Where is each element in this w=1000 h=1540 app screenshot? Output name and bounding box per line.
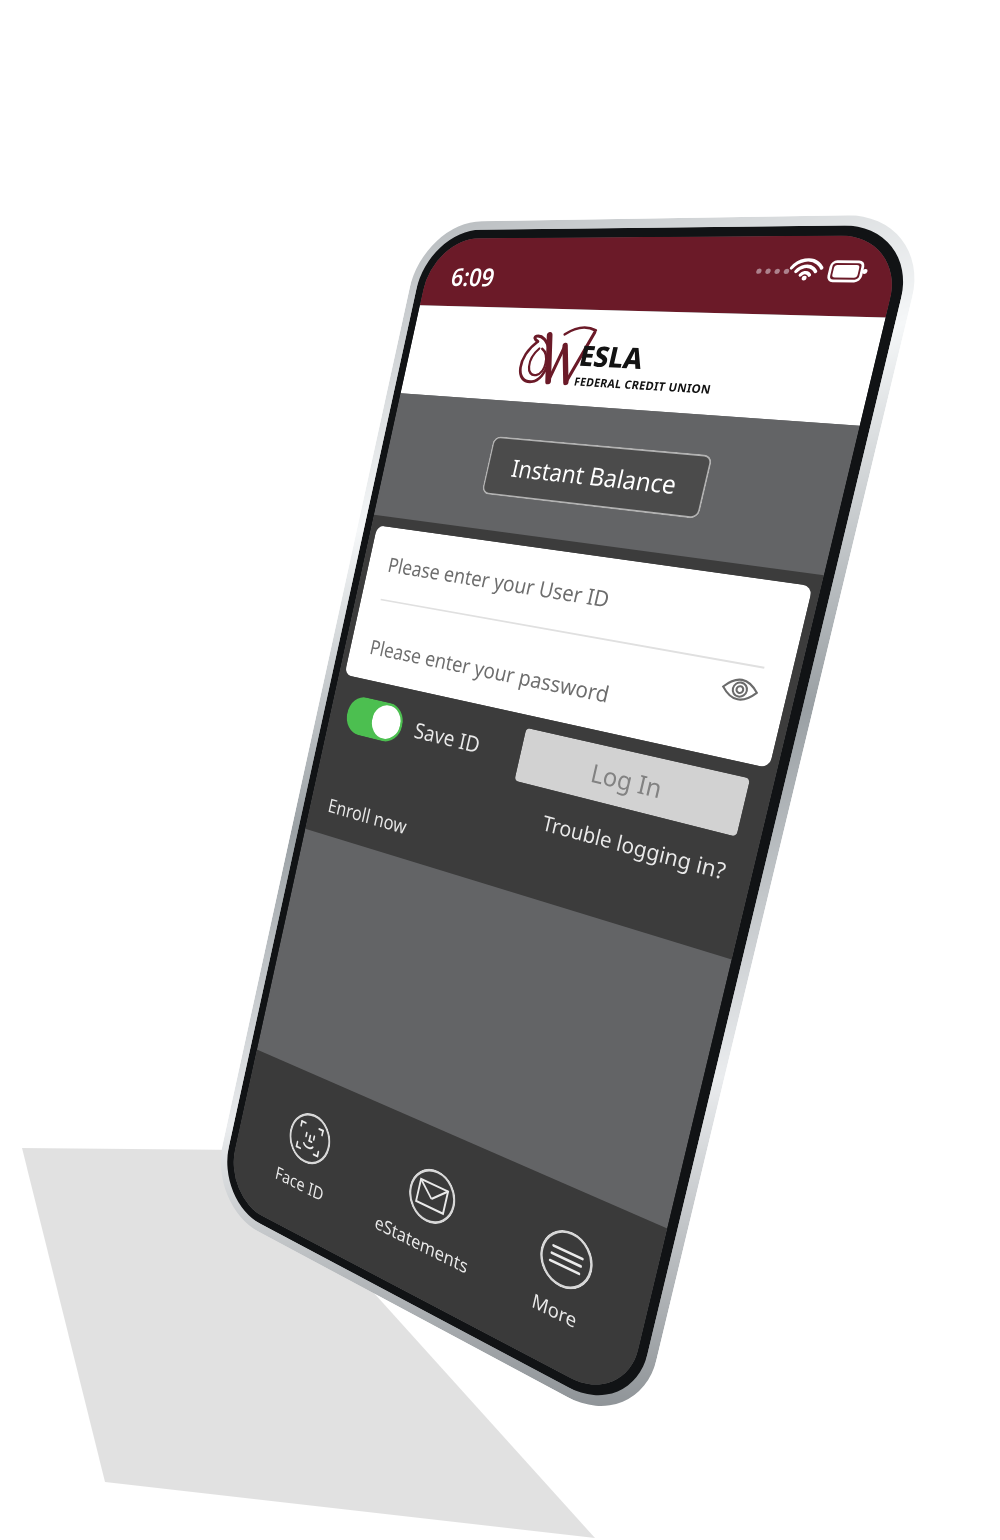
other: Face ID — [295, 1119, 325, 1159]
button[interactable]: Log In — [514, 728, 750, 837]
button[interactable]: Face ID — [265, 1094, 347, 1217]
staticText: Instant Balance — [508, 451, 680, 502]
button[interactable]: Enroll now — [326, 791, 410, 839]
staticText: eStatements — [373, 1209, 471, 1280]
staticText: More — [529, 1287, 579, 1335]
other: More — [549, 1242, 583, 1277]
button[interactable]: eStatements — [364, 1140, 495, 1291]
button[interactable]: More — [516, 1210, 609, 1348]
button[interactable]: Instant Balance — [481, 436, 713, 519]
staticText: Save ID — [412, 715, 483, 759]
button[interactable]: Save ID — [343, 694, 484, 764]
staticText: ESLA — [576, 336, 648, 377]
staticText: Please enter your password — [367, 632, 613, 709]
staticText: Log In — [588, 755, 666, 806]
staticText: 6:09 — [448, 260, 498, 293]
other: eStatements — [416, 1179, 448, 1214]
staticText: FEDERAL CREDIT UNION — [573, 374, 713, 398]
staticText: Please enter your User ID — [386, 550, 613, 614]
staticText: Face ID — [273, 1160, 326, 1207]
button[interactable]: Please enter your password — [344, 597, 792, 768]
button[interactable]: Trouble logging in? — [540, 808, 730, 886]
button[interactable]: Show password — [713, 663, 767, 716]
button[interactable]: Please enter your User ID — [362, 525, 813, 672]
